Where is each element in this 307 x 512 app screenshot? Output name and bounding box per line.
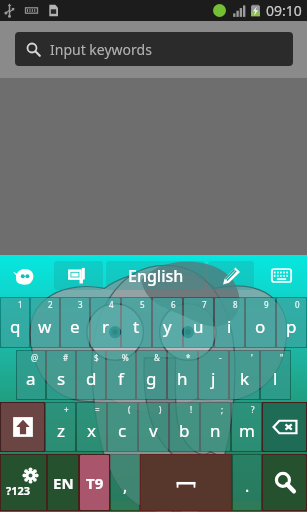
staticText: h (177, 367, 188, 390)
staticText: & (154, 352, 160, 363)
staticText: ) (159, 404, 162, 415)
button[interactable] (263, 455, 306, 510)
staticText: x (87, 419, 96, 442)
button[interactable]: l (261, 351, 290, 399)
button[interactable]: Theme (208, 261, 254, 290)
staticText: n (210, 419, 221, 442)
button[interactable]: k (230, 351, 259, 399)
staticText: % (122, 352, 129, 363)
button[interactable]: n (201, 403, 230, 451)
staticText: EN (53, 473, 74, 493)
staticText: v (149, 419, 158, 442)
staticText: 5 (140, 299, 145, 310)
button[interactable]: a (17, 351, 45, 399)
button[interactable]: o (246, 298, 275, 347)
button[interactable]: English (106, 261, 205, 290)
button[interactable]: p (277, 298, 306, 347)
button[interactable]: Symbols (1, 455, 46, 510)
button[interactable]: w (31, 298, 59, 347)
button[interactable]: Emoji (54, 261, 103, 290)
staticText: + (64, 404, 69, 415)
button[interactable]: Input keywords (15, 32, 293, 66)
staticText: , (123, 475, 128, 497)
staticText: 0 (295, 299, 300, 310)
button[interactable]: m (232, 403, 261, 451)
staticText: = (95, 404, 100, 415)
button[interactable]: u (184, 298, 213, 347)
staticText: * (186, 352, 191, 363)
staticText: m (239, 419, 255, 442)
button[interactable]: i (215, 298, 244, 347)
staticText: k (240, 367, 250, 390)
staticText: - (219, 352, 222, 363)
staticText: t (133, 315, 140, 338)
staticText: p (286, 315, 297, 338)
staticText: y (163, 315, 172, 338)
staticText: . (245, 475, 250, 497)
staticText: ' (251, 352, 253, 363)
staticText: i (227, 315, 232, 338)
staticText: @ (31, 352, 39, 363)
button[interactable]: v (139, 403, 168, 451)
staticText: 4 (109, 299, 114, 310)
button[interactable]: s (47, 351, 75, 399)
staticText: c (118, 419, 127, 442)
button[interactable]: Hide keyboard (264, 255, 298, 296)
button[interactable]: GO Keyboard (7, 255, 43, 296)
button[interactable]: g (137, 351, 166, 399)
staticText: 7 (202, 299, 207, 310)
staticText: b (179, 419, 190, 442)
staticText: ; (221, 404, 224, 415)
button[interactable]: q (1, 298, 29, 347)
staticText: 09:10 (266, 1, 302, 20)
staticText: q (10, 315, 21, 338)
button[interactable]: , (111, 455, 139, 510)
staticText: f (118, 367, 124, 390)
button[interactable] (263, 403, 306, 451)
staticText: l (273, 367, 278, 390)
staticText: 1 (18, 299, 23, 310)
staticText: z (57, 419, 65, 442)
staticText: " (280, 352, 284, 363)
staticText: English (128, 265, 184, 287)
staticText: 8 (233, 299, 238, 310)
button[interactable] (141, 455, 231, 510)
button[interactable]: x (77, 403, 106, 451)
staticText: d (86, 367, 97, 390)
staticText: 9 (264, 299, 269, 310)
staticText: j (211, 367, 216, 390)
staticText: 3 (78, 299, 83, 310)
button[interactable]: e (61, 298, 89, 347)
staticText: ! (190, 404, 193, 415)
staticText: $ (94, 352, 99, 363)
staticText: T9 (86, 473, 104, 493)
button[interactable]: b (170, 403, 199, 451)
button[interactable] (1, 403, 44, 451)
staticText: w (38, 315, 52, 338)
button[interactable]: . (233, 455, 261, 510)
button[interactable]: f (107, 351, 135, 399)
staticText: ?123 (6, 483, 31, 498)
button[interactable]: r (91, 298, 120, 347)
staticText: o (255, 315, 266, 338)
staticText: g (146, 367, 157, 390)
staticText: # (63, 352, 69, 363)
staticText: r (102, 315, 110, 338)
button[interactable]: c (108, 403, 137, 451)
staticText: a (26, 367, 36, 390)
button[interactable]: y (153, 298, 182, 347)
staticText: u (193, 315, 204, 338)
staticText: s (57, 367, 66, 390)
staticText: Input keywords (50, 40, 152, 59)
button[interactable]: h (168, 351, 197, 399)
button[interactable]: j (199, 351, 228, 399)
button[interactable]: EN (48, 455, 78, 510)
button[interactable]: t (122, 298, 151, 347)
button[interactable]: T9 (80, 455, 109, 510)
staticText: ? (251, 404, 255, 415)
staticText: 6 (171, 299, 176, 310)
button[interactable]: d (77, 351, 105, 399)
staticText: 2 (48, 299, 53, 310)
staticText: ( (128, 404, 131, 415)
button[interactable]: z (46, 403, 75, 451)
